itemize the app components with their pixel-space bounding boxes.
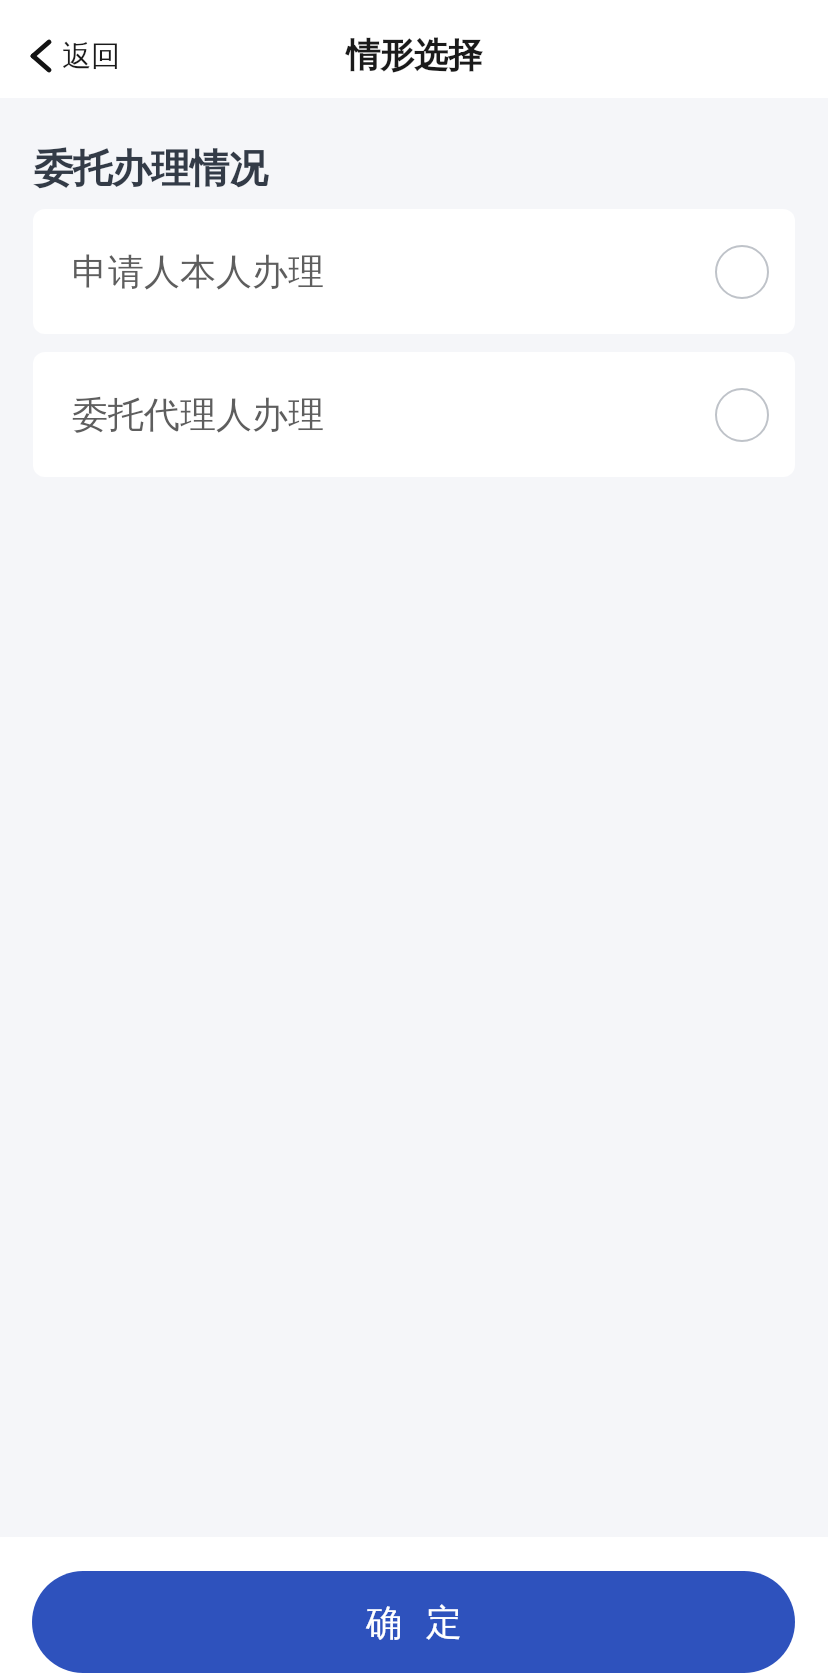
staticText: 定 [426,1600,462,1645]
staticText: 情形选择 [346,34,482,77]
button[interactable]: 委托代理人办理 [33,352,795,477]
button[interactable]: 申请人本人办理 [33,209,795,334]
staticText: 申请人本人办理 [72,249,324,294]
button[interactable]: 确 [32,1571,795,1673]
staticText: 返回 [62,38,120,75]
staticText: 确 [366,1600,402,1645]
staticText: 委托代理人办理 [72,392,324,437]
staticText: 委托办理情况 [34,144,268,193]
button[interactable]: 返回 [28,36,120,76]
